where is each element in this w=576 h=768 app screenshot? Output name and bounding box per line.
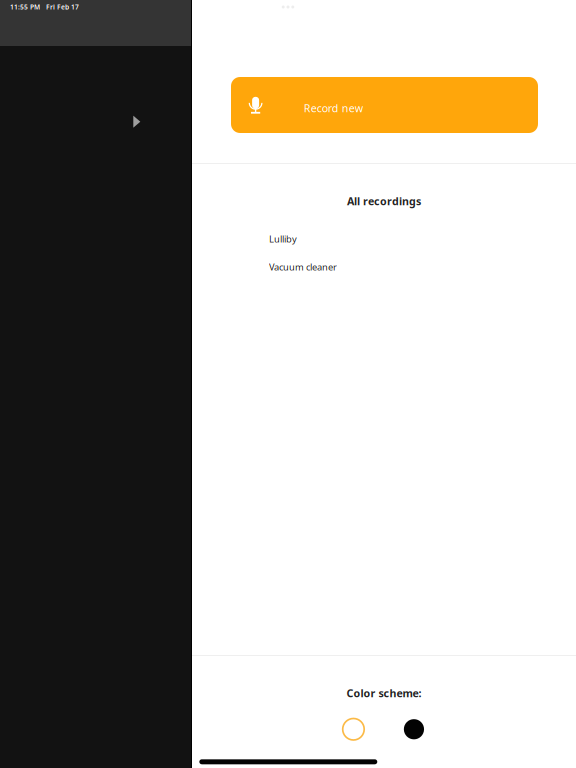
button[interactable]: Vacuum cleaner [269, 258, 576, 276]
staticText: Lulliby [269, 233, 297, 245]
button[interactable]: Lulliby [269, 230, 576, 248]
button[interactable]: Dark colour scheme [399, 714, 429, 744]
staticText: 11:55 PM [10, 2, 40, 11]
button[interactable]: Record new [231, 77, 538, 133]
staticText: Fri Feb 17 [46, 2, 79, 11]
button[interactable]: Show sidebar [125, 109, 149, 135]
staticText: All recordings [347, 194, 421, 208]
staticText: Vacuum cleaner [269, 261, 337, 273]
button[interactable]: Light colour scheme [339, 714, 368, 744]
staticText: Color scheme: [346, 686, 421, 700]
staticText: Record new [304, 101, 363, 115]
